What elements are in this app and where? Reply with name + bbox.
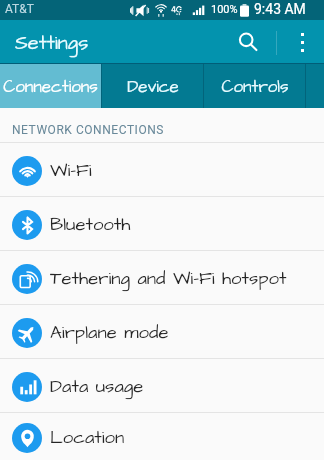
button[interactable]: Controls	[204, 64, 305, 108]
button[interactable]: Data usage	[0, 359, 324, 412]
button[interactable]: Connections	[0, 64, 101, 108]
button[interactable]: More options	[280, 20, 324, 64]
staticText: Controls	[221, 75, 289, 99]
staticText: Tethering and Wi-Fi hotspot	[50, 266, 287, 292]
button[interactable]: Wi-Fi	[0, 143, 324, 196]
staticText: AT&T	[5, 2, 34, 16]
button[interactable]: Device	[102, 64, 203, 108]
staticText: Device	[127, 75, 179, 99]
staticText: Settings	[15, 29, 89, 57]
staticText: Airplane mode	[50, 320, 169, 346]
button[interactable]: Search	[226, 20, 270, 64]
staticText: Location	[50, 425, 125, 451]
staticText: 100%	[211, 3, 238, 16]
staticText: Bluetooth	[50, 212, 131, 238]
button[interactable]: Location	[0, 413, 324, 460]
button[interactable]: Tethering and Wi-Fi hotspot	[0, 251, 324, 304]
staticText: 9:43 AM	[254, 1, 306, 17]
button[interactable]: Airplane mode	[0, 305, 324, 358]
staticText: NETWORK CONNECTIONS	[12, 123, 165, 137]
button[interactable]: Bluetooth	[0, 197, 324, 250]
staticText: Wi-Fi	[50, 158, 92, 184]
staticText: Data usage	[50, 374, 144, 400]
staticText: Connections	[3, 75, 98, 99]
